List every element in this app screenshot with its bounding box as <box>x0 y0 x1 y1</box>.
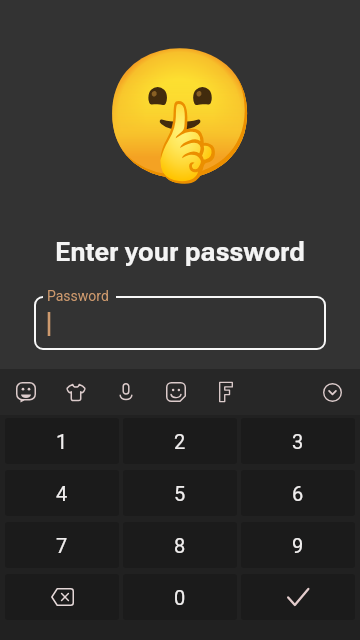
button[interactable]: 2 <box>123 418 237 464</box>
staticText: 2 <box>174 430 186 453</box>
staticText: 5 <box>174 482 186 505</box>
staticText: 4 <box>56 482 68 505</box>
button[interactable]: Text style <box>203 369 249 415</box>
staticText: 3 <box>292 430 304 453</box>
button[interactable]: 1 <box>5 418 119 464</box>
staticText: 6 <box>292 482 304 505</box>
button[interactable]: Hide keyboard <box>309 369 355 415</box>
button[interactable] <box>34 296 326 350</box>
button[interactable]: Emoji <box>153 369 199 415</box>
button[interactable]: 8 <box>123 522 237 568</box>
staticText: 9 <box>292 534 304 557</box>
button[interactable]: 4 <box>5 470 119 516</box>
button[interactable]: 7 <box>5 522 119 568</box>
button[interactable]: 9 <box>241 522 355 568</box>
staticText: 1 <box>56 430 68 453</box>
button[interactable]: Done <box>241 574 355 620</box>
button[interactable]: Backspace <box>5 574 119 620</box>
staticText: 🤫 <box>0 40 360 189</box>
button[interactable]: Clothes <box>53 369 99 415</box>
button[interactable]: 6 <box>241 470 355 516</box>
button[interactable]: 3 <box>241 418 355 464</box>
button[interactable]: 5 <box>123 470 237 516</box>
staticText: Password <box>47 288 109 304</box>
button[interactable]: Voice input <box>103 369 149 415</box>
staticText: 8 <box>174 534 186 557</box>
staticText: 0 <box>174 586 186 609</box>
button[interactable]: 0 <box>123 574 237 620</box>
staticText: Enter your password <box>0 237 360 267</box>
staticText: 7 <box>56 534 68 557</box>
button[interactable]: Stickers <box>3 369 49 415</box>
